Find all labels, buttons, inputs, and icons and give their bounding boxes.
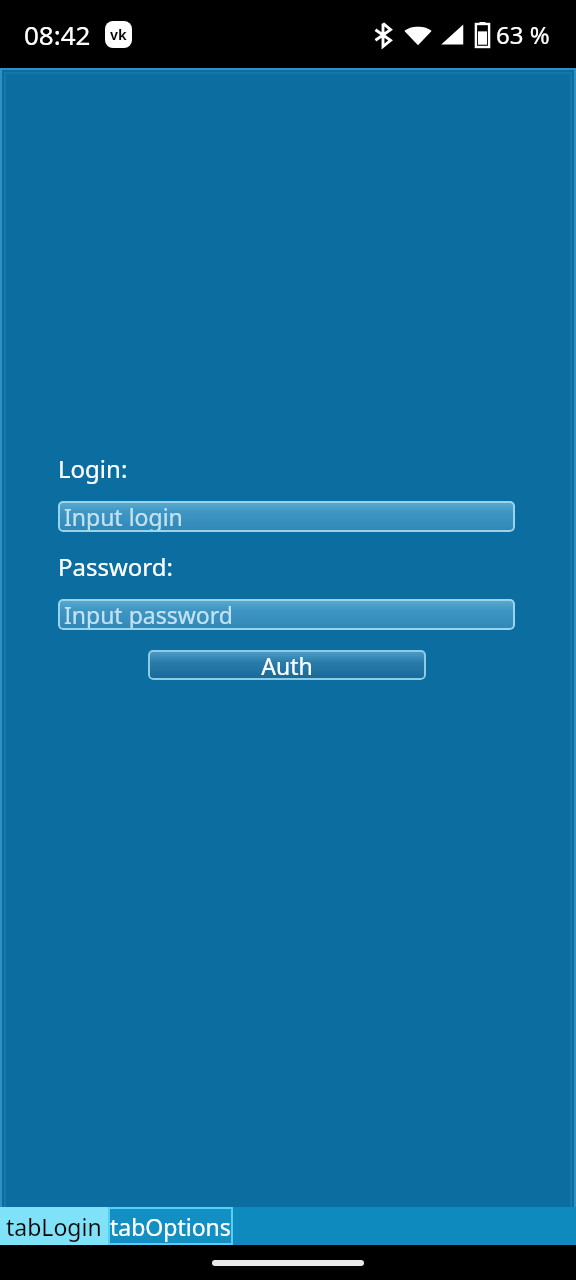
staticText: Password:: [58, 550, 173, 583]
staticText: Auth: [261, 650, 313, 680]
other: Bluetooth: [374, 23, 392, 47]
staticText: Input login: [64, 501, 183, 532]
other: Wi-Fi: [404, 24, 432, 46]
staticText: tabLogin: [6, 1211, 102, 1242]
button[interactable]: Auth: [148, 650, 426, 680]
other: Cellular signal: [440, 23, 464, 46]
other: Battery 63 percent: [475, 22, 490, 47]
staticText: tabOptions: [110, 1211, 231, 1242]
staticText: 08:42: [24, 17, 91, 52]
button[interactable]: Input login: [58, 501, 515, 532]
button[interactable]: tabOptions: [108, 1207, 233, 1245]
button[interactable]: Input password: [58, 599, 515, 630]
staticText: vk: [110, 25, 127, 44]
staticText: Input password: [64, 599, 233, 630]
button[interactable]: tabLogin: [0, 1207, 108, 1245]
staticText: Login:: [58, 452, 128, 485]
staticText: 63 %: [496, 18, 550, 51]
